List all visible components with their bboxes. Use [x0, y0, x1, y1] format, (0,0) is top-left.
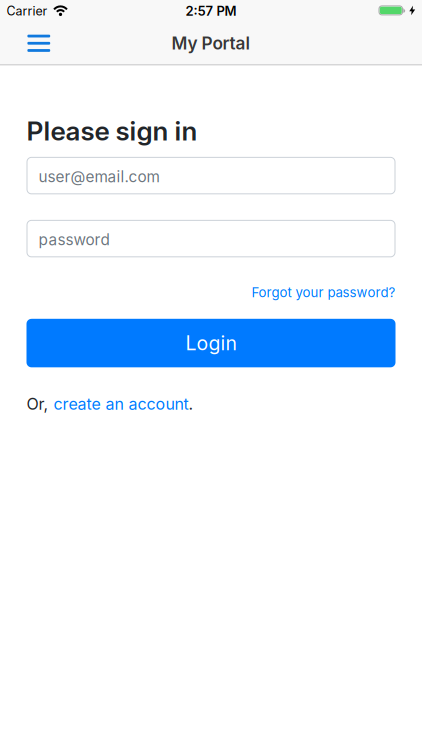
- button[interactable]: password: [26, 220, 395, 257]
- staticText: Please sign in: [26, 115, 197, 147]
- button[interactable]: user@email.com: [26, 157, 395, 194]
- button[interactable]: Login: [26, 319, 395, 367]
- staticText: password: [38, 230, 109, 249]
- button[interactable]: Forgot your password?: [251, 284, 395, 300]
- staticText: .: [188, 394, 193, 414]
- staticText: user@email.com: [38, 167, 159, 186]
- button[interactable]: create an account: [53, 394, 188, 414]
- staticText: create an account: [53, 394, 188, 414]
- staticText: My Portal: [171, 33, 250, 54]
- staticText: Forgot your password?: [251, 284, 395, 300]
- staticText: Login: [185, 331, 236, 355]
- staticText: 2:57 PM: [185, 3, 236, 19]
- staticText: Or,: [26, 394, 53, 414]
- button[interactable]: Menu: [0, 35, 50, 52]
- staticText: Carrier: [6, 3, 47, 18]
